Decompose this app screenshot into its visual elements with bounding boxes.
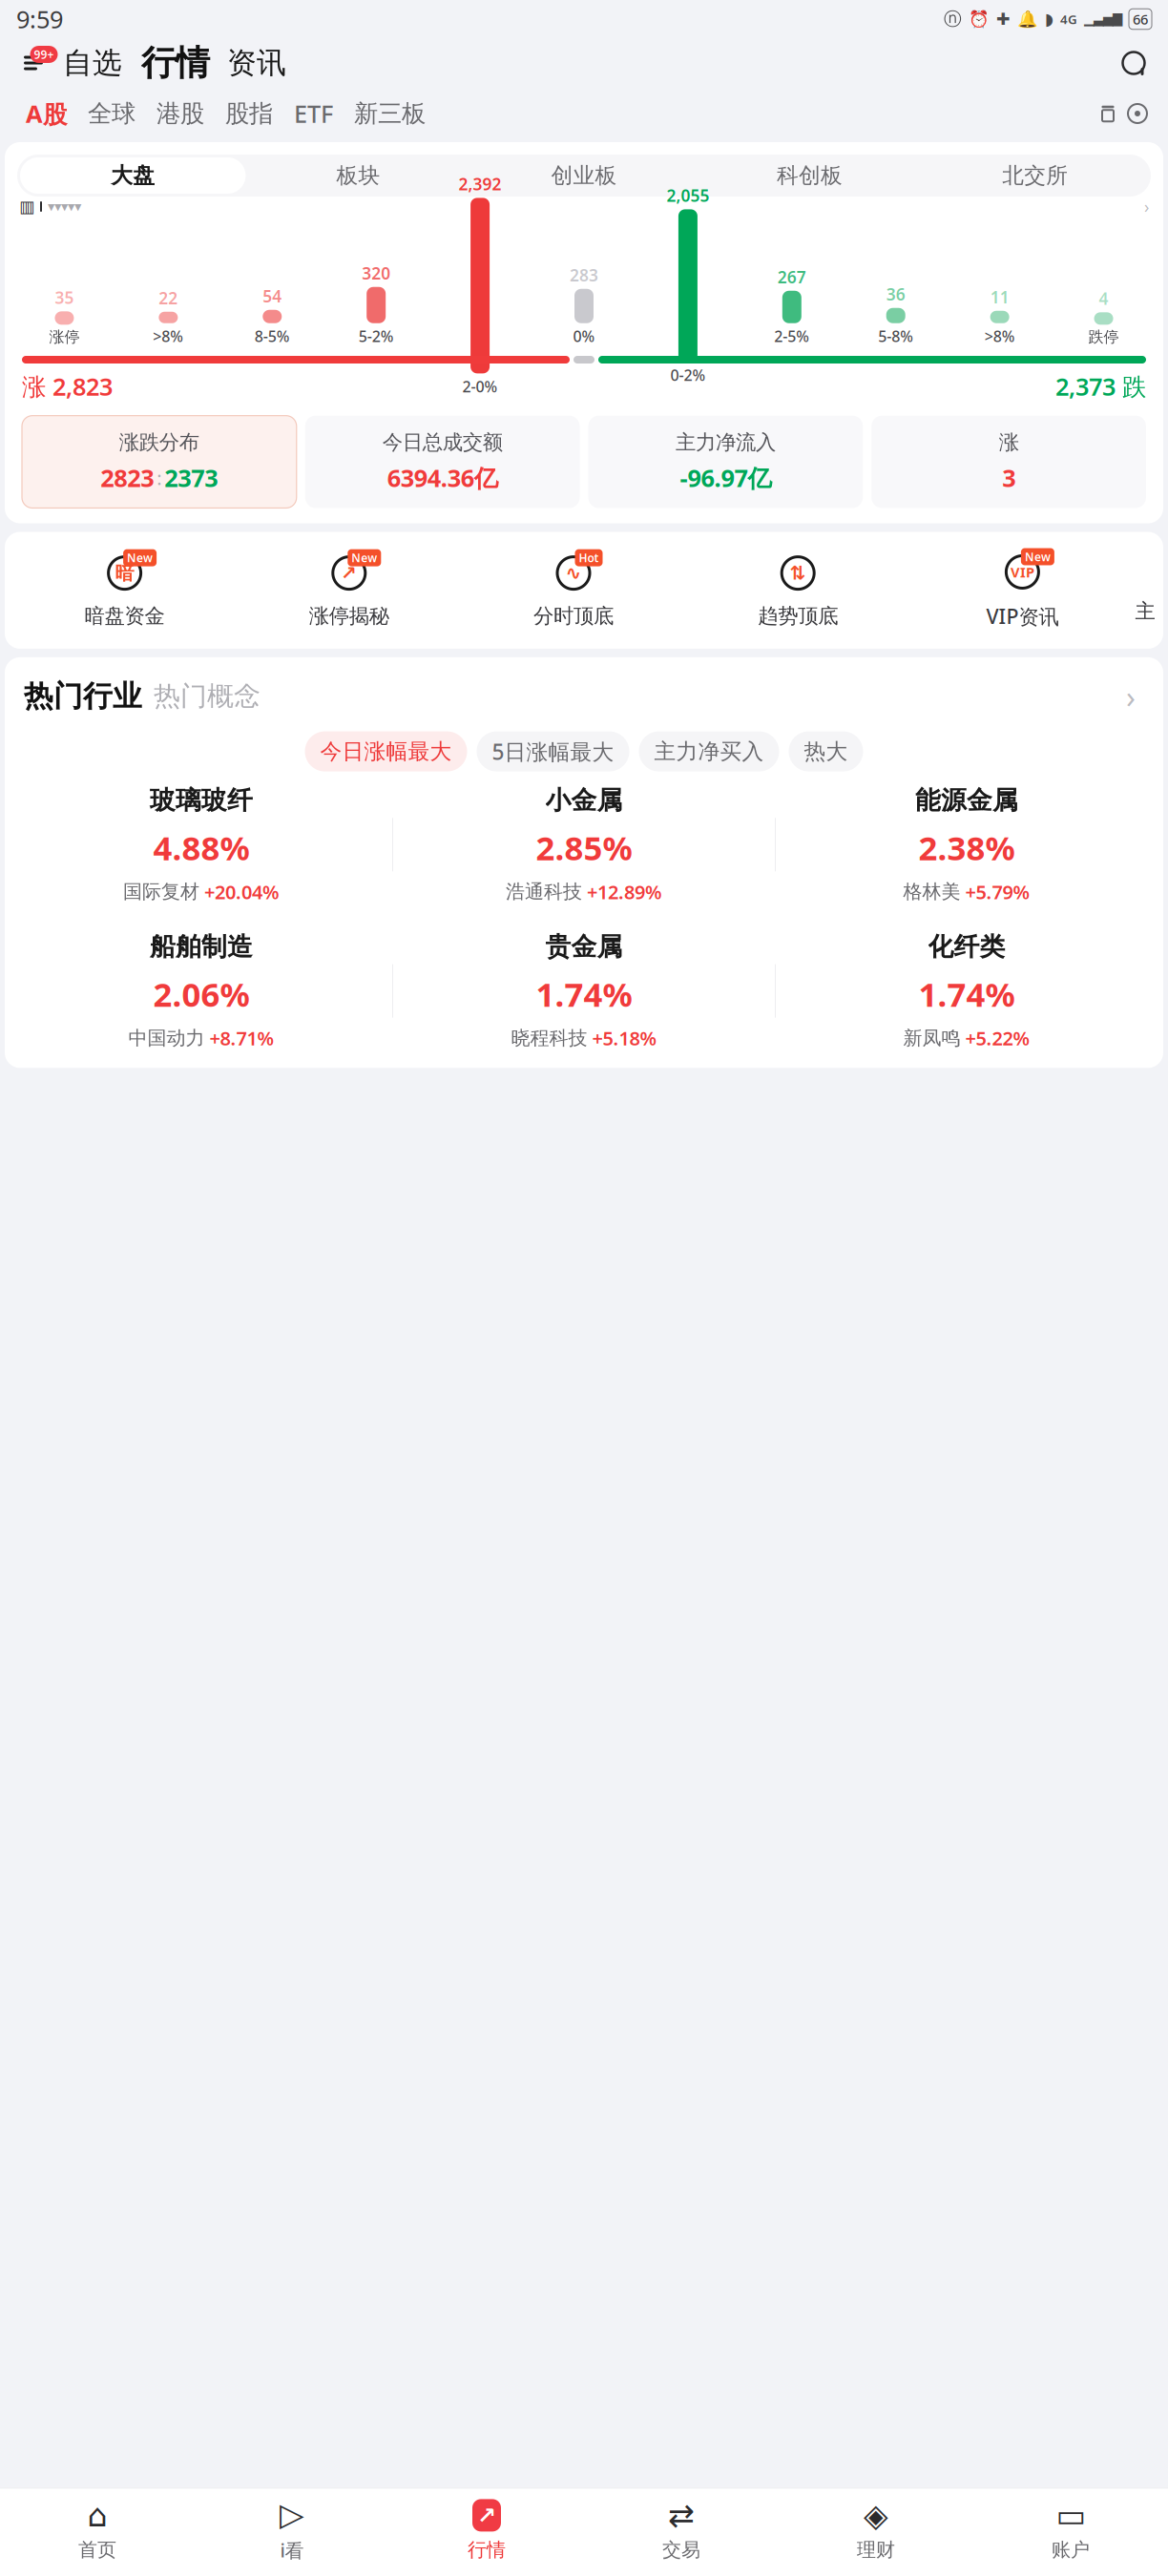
staticText: 涨停	[49, 328, 80, 346]
staticText: 1.74%	[918, 972, 1015, 1016]
staticText: 4.88%	[153, 826, 250, 869]
button[interactable]: VIP	[910, 551, 1135, 630]
button[interactable]: 贵金属	[393, 918, 775, 1064]
staticText: VIP资讯	[986, 602, 1059, 630]
staticText: A股	[26, 97, 67, 130]
button[interactable]: 玻璃玻纤	[10, 771, 392, 918]
staticText: ↗	[477, 2502, 496, 2528]
button[interactable]: ⇄	[584, 2499, 779, 2562]
staticText: 格林美	[903, 880, 960, 904]
staticText: 2,373 跌	[1055, 370, 1146, 402]
staticText: 2-0%	[462, 376, 498, 397]
staticText: 北交所	[1002, 162, 1068, 189]
button[interactable]: 港股	[146, 93, 215, 135]
staticText: 涨跌分布	[119, 430, 199, 455]
button[interactable]: 化纤类	[776, 918, 1158, 1064]
staticText: 板块	[336, 162, 380, 189]
button[interactable]: 能源金属	[776, 771, 1158, 918]
staticText: 主力净买入	[654, 738, 764, 765]
staticText: 320	[362, 262, 390, 284]
staticText: 大盘	[111, 162, 155, 189]
staticText: ⓝ	[944, 8, 962, 30]
button[interactable]: 热门概念	[154, 680, 261, 713]
button[interactable]: 科创板	[697, 157, 922, 194]
button[interactable]: 热大	[789, 731, 863, 771]
button[interactable]: ▷	[195, 2498, 389, 2563]
button[interactable]: 查看更多	[1117, 683, 1144, 710]
button[interactable]: 更多	[1094, 96, 1122, 131]
button[interactable]: ∿	[461, 552, 686, 629]
button[interactable]: ⌂	[0, 2499, 195, 2562]
staticText: ⇄	[668, 2497, 695, 2533]
button[interactable]: 今日总成交额	[305, 416, 580, 508]
staticText: >8%	[153, 326, 184, 346]
staticText: 283	[570, 264, 598, 286]
staticText: 能源金属	[915, 785, 1018, 816]
staticText: 9:59	[16, 3, 63, 35]
staticText: 趋势顶底	[758, 604, 838, 629]
staticText: 资讯	[227, 45, 286, 81]
staticText: 科创板	[777, 162, 843, 189]
button[interactable]: 北交所	[922, 157, 1148, 194]
staticText: 2-5%	[774, 326, 809, 346]
button[interactable]: 股指	[215, 93, 283, 135]
button[interactable]: 主力净流入	[588, 416, 863, 508]
button[interactable]: 热门行业	[24, 678, 142, 714]
button[interactable]: 船舶制造	[10, 918, 392, 1064]
staticText: +20.04%	[204, 879, 280, 904]
staticText: 港股	[156, 99, 204, 128]
staticText: ▥	[19, 197, 34, 216]
staticText: 分时顶底	[533, 604, 614, 629]
button[interactable]: 主力净买入	[639, 731, 779, 771]
staticText: 5-2%	[359, 326, 394, 346]
button[interactable]: 自选	[53, 45, 132, 81]
staticText: ▷	[280, 2496, 304, 2532]
button[interactable]: ↗	[389, 2499, 584, 2562]
button[interactable]: ▭	[973, 2499, 1168, 2562]
button[interactable]: ETF	[283, 93, 344, 135]
button[interactable]: 菜单	[13, 44, 53, 82]
staticText: ▭	[1056, 2497, 1085, 2533]
staticText: 暗	[115, 561, 134, 585]
staticText: ▾▾▾▾▾	[48, 199, 81, 214]
button[interactable]: 涨跌分布	[22, 416, 297, 508]
staticText: 4	[1099, 287, 1108, 309]
staticText: 全球	[88, 99, 136, 128]
staticText: 2.06%	[153, 972, 250, 1016]
button[interactable]: ⇅	[686, 552, 910, 629]
staticText: 2823	[101, 462, 154, 494]
staticText: 行情	[468, 2538, 506, 2562]
staticText: ›	[1126, 676, 1136, 717]
button[interactable]: 板块	[246, 157, 471, 194]
staticText: +5.18%	[592, 1025, 657, 1051]
staticText: 5-8%	[878, 326, 913, 346]
staticText: 小金属	[545, 785, 623, 816]
staticText: 新凤鸣	[903, 1026, 960, 1050]
button[interactable]: 涨	[872, 416, 1146, 508]
button[interactable]: 搜索	[1113, 42, 1155, 84]
staticText: :	[157, 465, 162, 490]
button[interactable]: A股	[15, 93, 77, 135]
button[interactable]: 大盘	[20, 157, 246, 194]
button[interactable]: 5日涨幅最大	[477, 731, 629, 771]
button[interactable]: ◈	[779, 2499, 973, 2562]
button[interactable]: 全球	[77, 93, 146, 135]
button[interactable]: 行情	[132, 42, 219, 84]
staticText: 2373	[165, 462, 218, 494]
staticText: 创业板	[551, 162, 617, 189]
button[interactable]: 设置	[1122, 96, 1153, 131]
staticText: 热门行业	[24, 678, 142, 714]
staticText: 2.38%	[918, 826, 1015, 869]
button[interactable]: 今日涨幅最大	[305, 731, 467, 771]
button[interactable]: 小金属	[393, 771, 775, 918]
button[interactable]: 创业板	[471, 157, 697, 194]
staticText: VIP	[1010, 563, 1034, 581]
button[interactable]: ↗	[237, 552, 461, 629]
staticText: 6394.36亿	[387, 462, 498, 494]
button[interactable]: 资讯	[219, 45, 294, 81]
staticText: 0%	[573, 326, 595, 346]
staticText: i看	[280, 2537, 304, 2563]
button[interactable]: 新三板	[344, 93, 436, 135]
button[interactable]: 暗	[12, 552, 237, 629]
staticText: 99+	[34, 47, 54, 62]
